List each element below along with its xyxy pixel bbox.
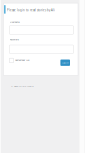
button[interactable]: ← Back to Ali's World (11, 85, 33, 87)
staticText: Username (9, 20, 19, 23)
staticText: Please login to read stories by Ali (7, 8, 55, 12)
staticText: Log In (62, 61, 68, 64)
button[interactable]: Log In (60, 59, 70, 66)
staticText: Password (9, 38, 18, 41)
button[interactable]: Remember Me (9, 58, 29, 63)
staticText: Remember Me (15, 58, 29, 61)
staticText: ← Back to Ali's World (11, 85, 33, 87)
